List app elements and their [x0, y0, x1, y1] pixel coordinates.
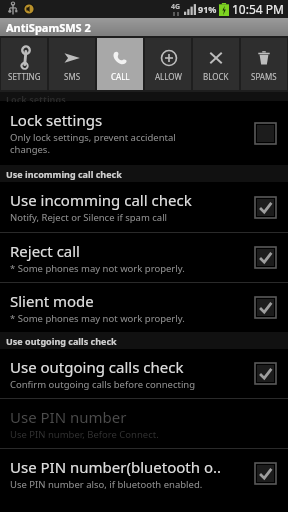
staticText: Use outgoing calls check — [10, 357, 184, 377]
staticText: 4G — [171, 2, 181, 12]
staticText: Confirm outgoing calls before connecting — [10, 378, 196, 391]
button[interactable]: Use PIN number(bluetooth o.. — [0, 449, 288, 498]
button[interactable]: BLOCK — [193, 38, 239, 90]
button[interactable]: Use incomming call check — [0, 182, 288, 232]
staticText: Lock settings — [6, 93, 66, 102]
staticText: 91% — [198, 3, 217, 15]
staticText: Use PIN number(bluetooth o.. — [10, 457, 222, 477]
button[interactable]: Use PIN number — [0, 399, 288, 448]
button[interactable]: SETTING — [1, 38, 47, 90]
staticText: Lock settings — [10, 110, 103, 130]
staticText: Notify, Reject or Silence if spam call — [10, 211, 168, 224]
button[interactable]: ALLOW — [145, 38, 191, 90]
staticText: SPAMS — [251, 71, 277, 82]
staticText: CALL — [111, 71, 130, 82]
staticText: 10:54 PM — [232, 1, 284, 17]
staticText: ALLOW — [155, 71, 182, 82]
button[interactable]: SMS — [49, 38, 95, 90]
button[interactable]: Lock settings — [0, 101, 288, 165]
button[interactable]: Slient mode — [0, 283, 288, 332]
button[interactable]: CALL — [97, 38, 143, 90]
staticText: SETTING — [8, 71, 41, 82]
staticText: Use incomming call check — [10, 190, 192, 210]
staticText: AntiSpamSMS 2 — [6, 20, 91, 35]
staticText: Use incomming call check — [6, 168, 122, 180]
staticText: Use outgoing calls check — [6, 335, 117, 347]
staticText: Use PIN number, Before Connect. — [10, 428, 159, 441]
staticText: * Some phones may not work properly. — [10, 312, 185, 325]
button[interactable]: Use outgoing calls check — [0, 349, 288, 398]
staticText: Reject call — [10, 241, 80, 261]
button[interactable]: SPAMS — [241, 38, 287, 90]
staticText: * Some phones may not work properly. — [10, 262, 185, 275]
staticText: Only lock settings, prevent accidental c… — [10, 131, 176, 156]
staticText: Use PIN number — [10, 407, 127, 427]
staticText: Slient mode — [10, 291, 94, 311]
staticText: Use PIN number also, if bluetooth enable… — [10, 478, 203, 491]
staticText: BLOCK — [203, 71, 229, 82]
button[interactable]: Reject call — [0, 233, 288, 282]
staticText: SMS — [64, 71, 81, 82]
